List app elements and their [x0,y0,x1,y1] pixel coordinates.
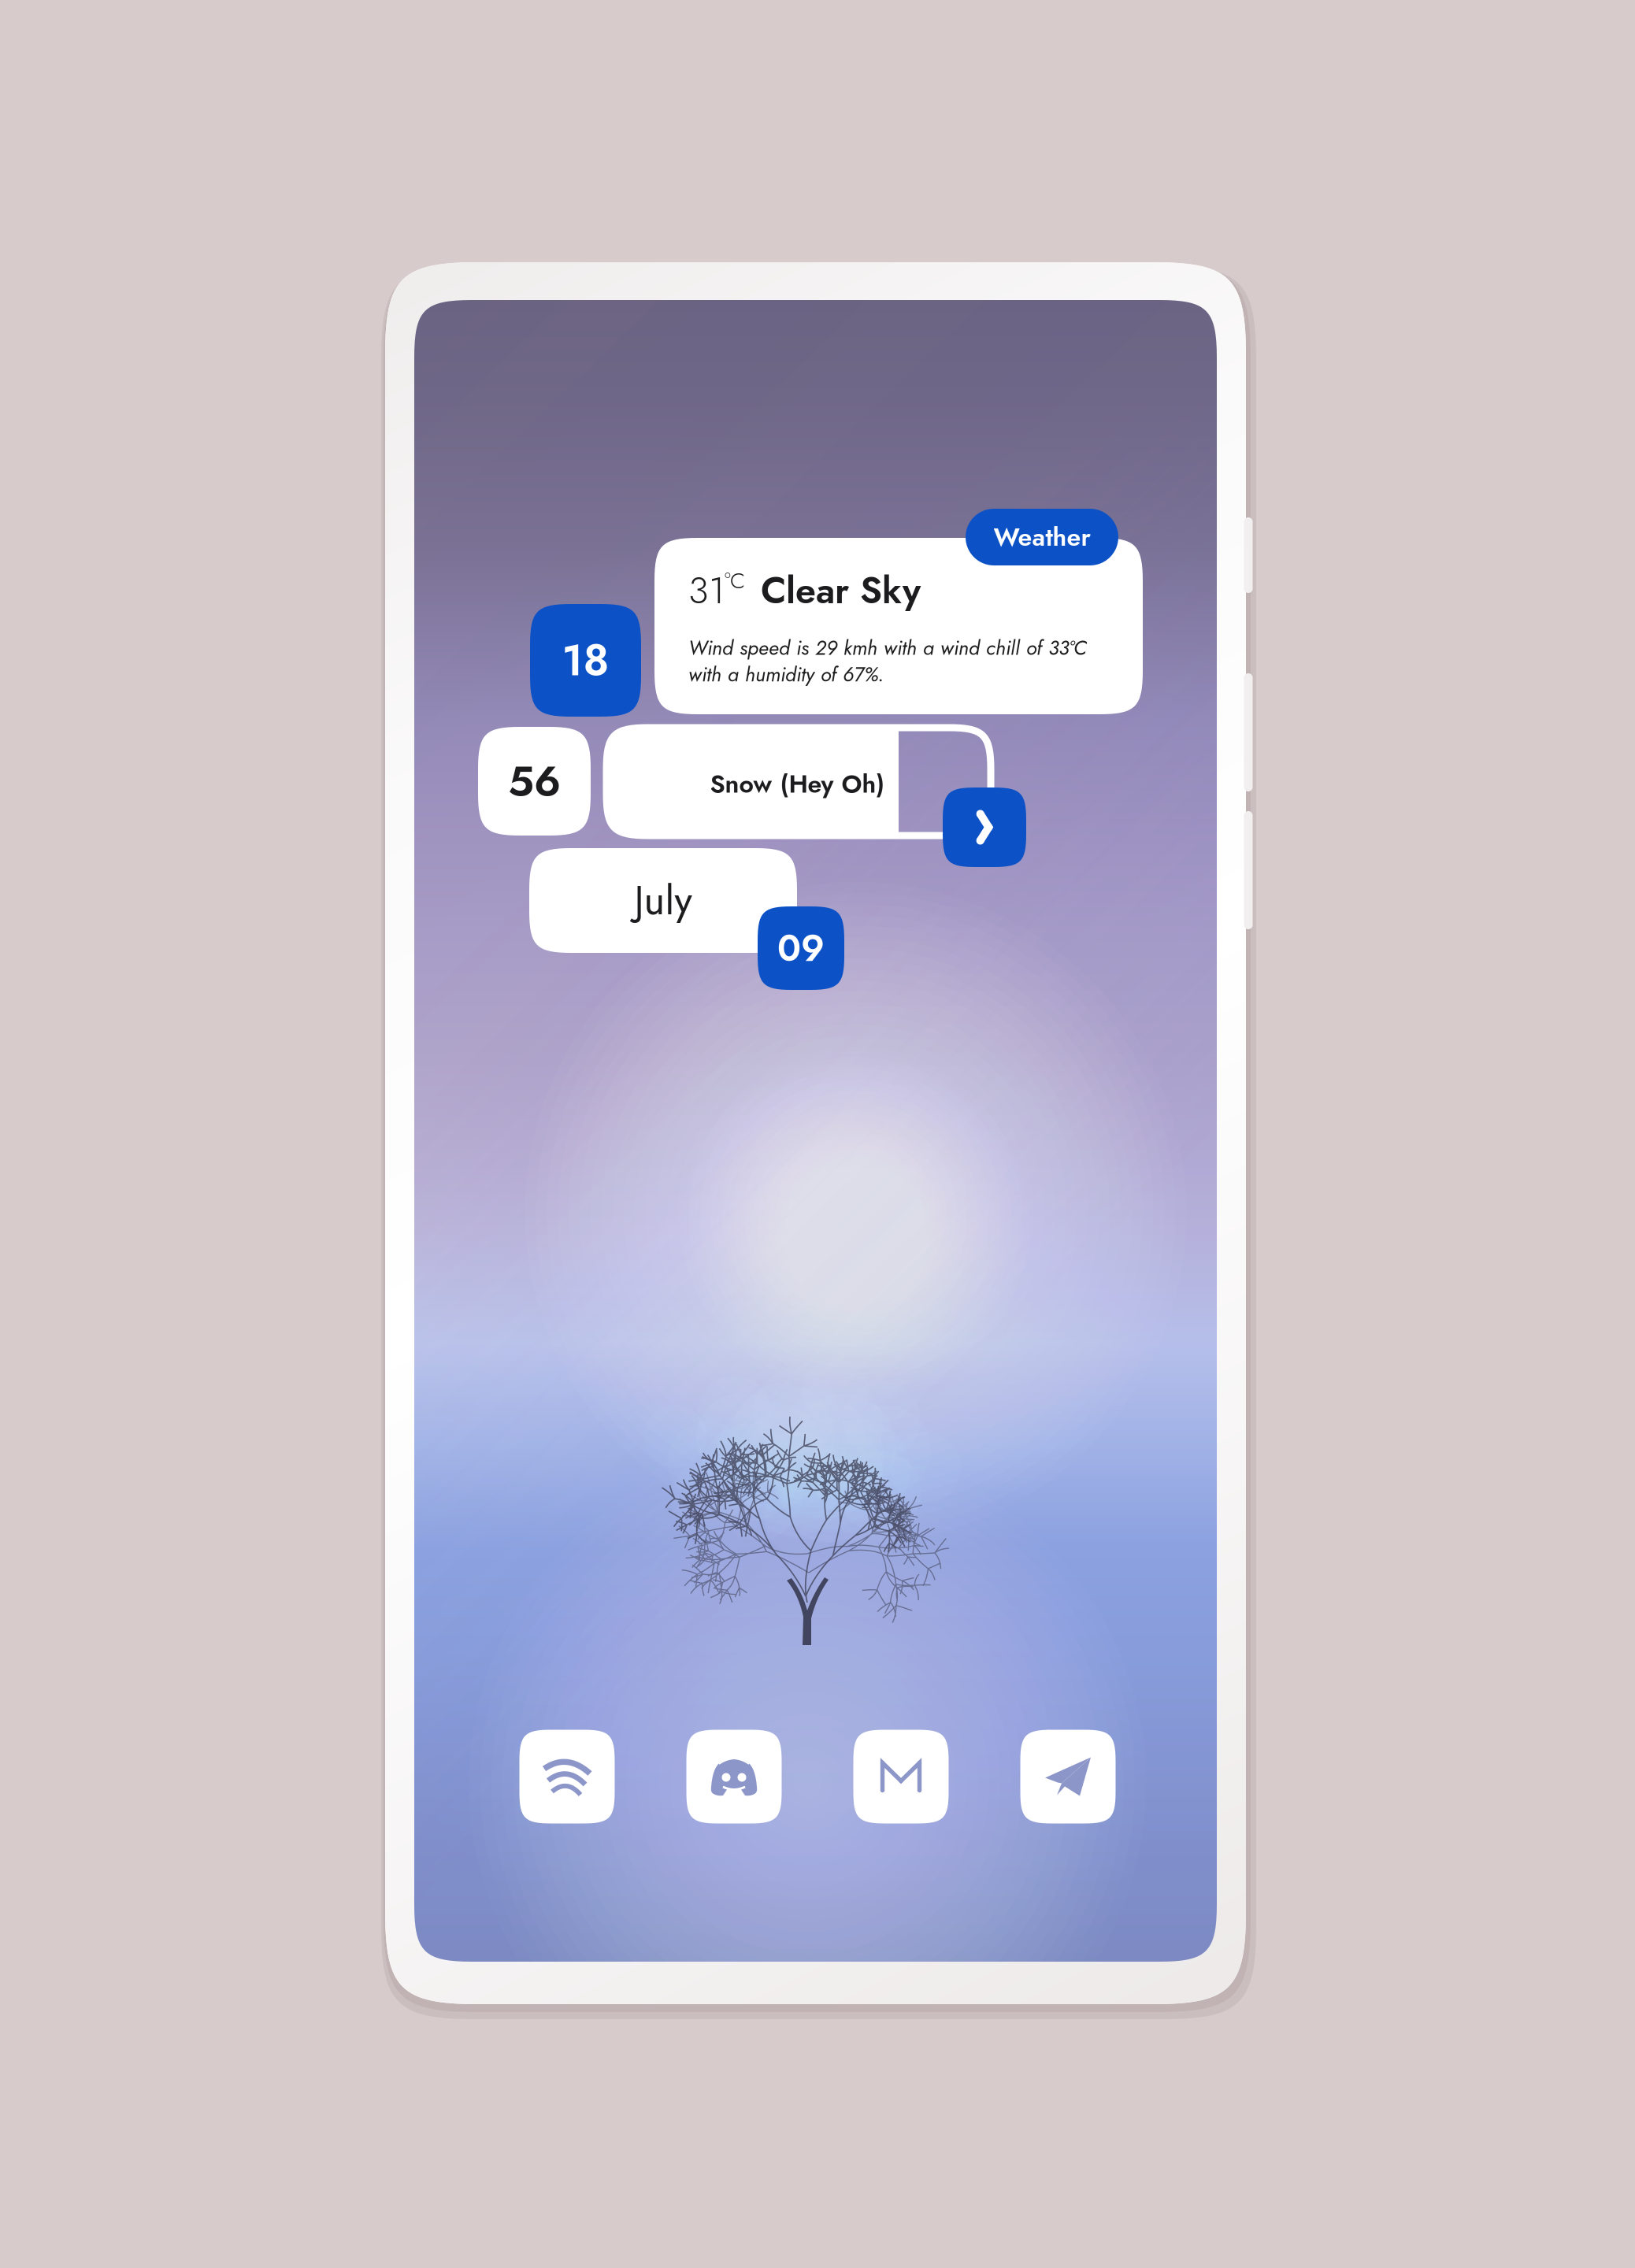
button[interactable]: Spotify [519,1730,615,1823]
button[interactable]: 56 [478,727,591,836]
button[interactable]: 18 [530,604,641,717]
staticText: 18 [562,629,609,691]
button[interactable]: Discord [686,1730,782,1823]
staticText: with a humidity of 67%. [688,660,884,689]
button[interactable]: Telegram [1020,1730,1116,1823]
staticText: 09 [777,922,825,975]
button[interactable]: 09 [758,906,844,990]
button[interactable]: Gmail [853,1730,949,1823]
staticText: °C [725,565,745,597]
staticText: 31 [688,564,725,617]
staticText: Snow (Hey Oh) [710,766,885,802]
button[interactable]: Next track [943,787,1026,867]
button[interactable]: July [529,848,797,953]
staticText: July [634,872,692,929]
button[interactable]: 31 [654,538,1143,714]
button[interactable]: Weather [966,509,1118,565]
staticText: Wind speed is 29 kmh with a wind chill o… [688,633,1087,662]
staticText: Weather [994,519,1090,555]
staticText: 56 [508,751,561,812]
staticText: Clear Sky [750,564,921,617]
button[interactable]: Snow (Hey Oh) [606,728,899,836]
